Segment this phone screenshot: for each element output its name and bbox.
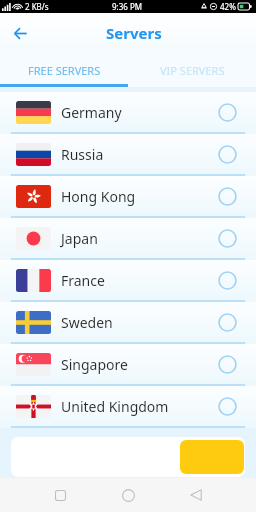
button[interactable]: United Kingdom (0, 386, 256, 428)
staticText: Servers (106, 23, 162, 43)
staticText: Sweden (61, 313, 113, 332)
staticText: Hong Kong (61, 187, 136, 206)
staticText: Singapore (61, 355, 128, 374)
button[interactable]: Singapore (0, 344, 256, 386)
button[interactable]: Back (7, 20, 33, 46)
button[interactable]: Recents (46, 481, 74, 509)
staticText: Russia (61, 145, 104, 164)
staticText: 42% (220, 1, 236, 12)
staticText: 2 KB/s (25, 1, 49, 12)
button[interactable]: VIP SERVERS (128, 52, 256, 84)
button[interactable]: Back (182, 481, 210, 509)
staticText: Germany (61, 103, 122, 122)
button[interactable]: France (0, 260, 256, 302)
staticText: VIP SERVERS (160, 63, 225, 78)
staticText: FREE SERVERS (28, 63, 101, 78)
staticText: Japan (61, 229, 98, 248)
button[interactable]: Home (114, 481, 142, 509)
button[interactable]: Hong Kong (0, 176, 256, 218)
staticText: United Kingdom (61, 397, 169, 416)
button[interactable]: Germany (0, 92, 256, 134)
button[interactable]: Sweden (0, 302, 256, 344)
staticText: 9:36 PM (112, 1, 143, 12)
button[interactable]: Russia (0, 134, 256, 176)
button[interactable]: Install (180, 440, 244, 474)
button[interactable]: Japan (0, 218, 256, 260)
button[interactable]: FREE SERVERS (0, 52, 128, 84)
staticText: France (61, 271, 105, 290)
